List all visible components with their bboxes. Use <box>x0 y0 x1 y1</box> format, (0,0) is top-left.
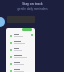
staticText: gentle daily reminders <box>17 7 48 11</box>
button[interactable] <box>6 39 35 46</box>
button[interactable] <box>6 60 35 67</box>
staticText: Stay on track <box>22 2 43 6</box>
button[interactable] <box>6 53 35 60</box>
button[interactable] <box>6 32 35 39</box>
button[interactable]: Turn on reminders <box>22 28 32 31</box>
button[interactable] <box>6 67 35 72</box>
button[interactable] <box>6 46 35 53</box>
